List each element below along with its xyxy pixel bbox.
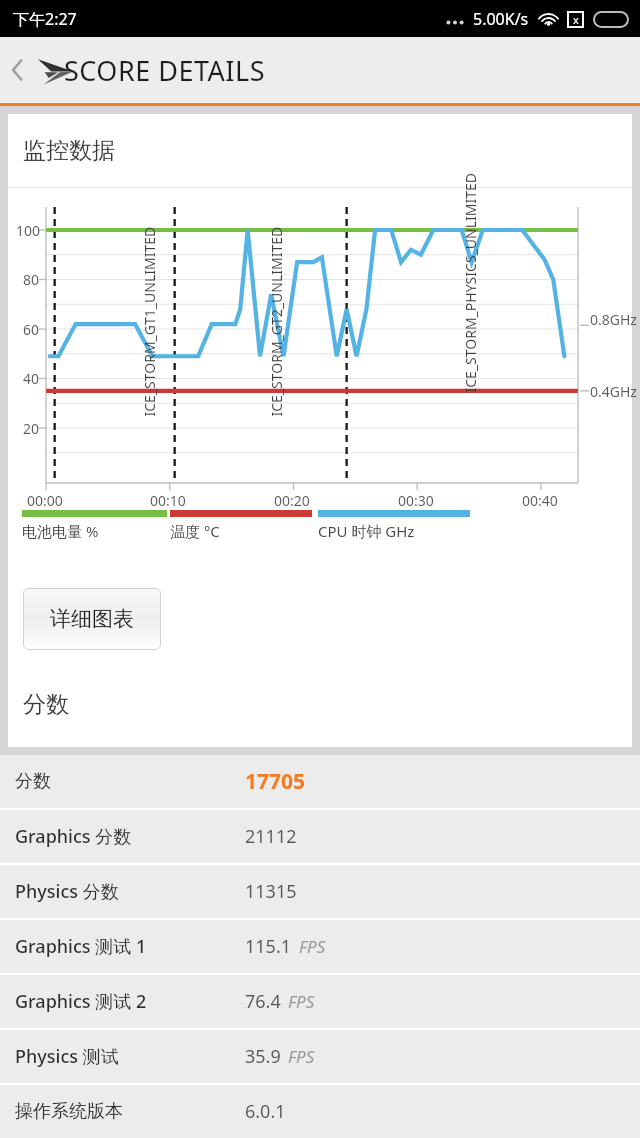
staticText: ICE_STORM_GT1_UNLIMITED — [139, 226, 158, 416]
staticText: 5.00K/s — [473, 8, 529, 30]
button[interactable]: Back — [0, 44, 82, 96]
staticText: 00:20 — [274, 491, 310, 510]
staticText: FPS — [288, 1045, 315, 1068]
staticText: 电池电量 % — [22, 521, 99, 541]
button[interactable]: Graphics 分数 — [0, 810, 640, 863]
staticText: 11315 — [245, 879, 297, 904]
staticText: 00:00 — [27, 491, 63, 510]
staticText: ICE_STORM_PHYSICS_UNLIMITED — [460, 172, 479, 392]
staticText: Graphics 分数 — [15, 824, 132, 849]
button[interactable]: Physics 分数 — [0, 865, 640, 918]
staticText: 00:30 — [398, 491, 434, 510]
staticText: 分数 — [23, 690, 69, 719]
button[interactable]: Graphics 测试 1 — [0, 920, 640, 973]
staticText: Graphics 测试 2 — [15, 989, 147, 1014]
staticText: Graphics 测试 1 — [15, 934, 147, 959]
staticText: FPS — [288, 990, 315, 1013]
staticText: CPU 时钟 GHz — [318, 521, 415, 541]
staticText: 操作系统版本 — [15, 1100, 123, 1123]
button[interactable]: Physics 测试 — [0, 1030, 640, 1083]
staticText: 监控数据 — [23, 136, 115, 165]
staticText: 115.1 — [245, 934, 292, 959]
staticText: Physics 测试 — [15, 1044, 119, 1069]
staticText: 76.4 — [245, 989, 281, 1014]
staticText: x — [573, 12, 579, 27]
staticText: 温度 °C — [170, 521, 220, 541]
staticText: 0.8GHz — [590, 310, 637, 329]
staticText: 下午2:27 — [13, 8, 77, 30]
staticText: 20 — [23, 419, 40, 438]
staticText: 100 — [16, 221, 41, 240]
staticText: SCORE DETAILS — [64, 52, 265, 89]
button[interactable]: 操作系统版本 — [0, 1085, 640, 1138]
staticText: FPS — [299, 935, 326, 958]
staticText: 详细图表 — [50, 606, 134, 632]
staticText: 分数 — [15, 770, 51, 793]
staticText: 40 — [23, 369, 40, 388]
staticText: 60 — [23, 320, 40, 339]
staticText: 80 — [23, 270, 40, 289]
button[interactable]: Graphics 测试 2 — [0, 975, 640, 1028]
staticText: 21112 — [245, 824, 297, 849]
staticText: 00:10 — [150, 491, 186, 510]
staticText: Physics 分数 — [15, 879, 119, 904]
staticText: ICE_STORM_GT2_UNLIMITED — [266, 226, 285, 416]
button[interactable]: 详细图表 — [23, 588, 161, 650]
staticText: 00:40 — [522, 491, 558, 510]
staticText: 35.9 — [245, 1044, 281, 1069]
staticText: 0.4GHz — [590, 382, 637, 401]
staticText: 17705 — [245, 767, 306, 796]
button[interactable]: 分数 — [0, 755, 640, 808]
staticText: 6.0.1 — [245, 1099, 286, 1124]
